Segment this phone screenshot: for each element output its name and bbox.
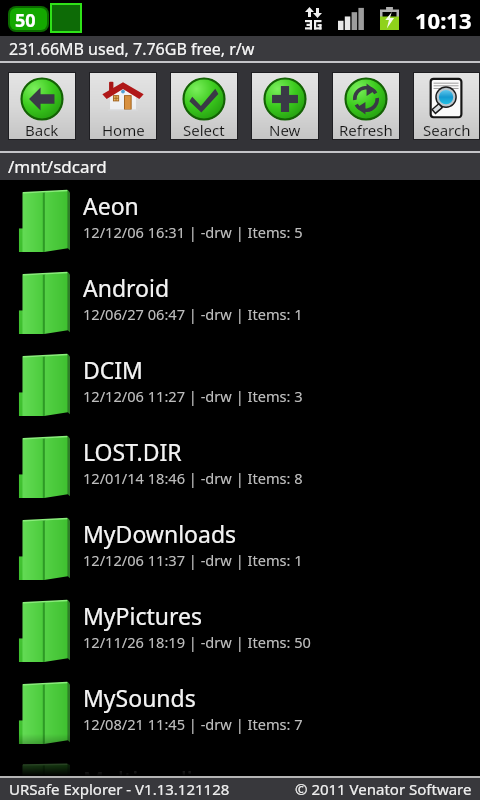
button[interactable]: Search [413,72,480,140]
staticText: 10:13 [415,5,472,35]
staticText: MyDownloads [83,518,237,549]
button[interactable]: Multimedia [0,754,480,776]
staticText: 50 [15,8,36,33]
button[interactable]: Android [0,262,480,344]
button[interactable]: New [251,72,319,140]
staticText: 12/06/27 06:47 | -drw | Items: 1 [83,304,303,324]
staticText: /mnt/sdcard [8,155,107,178]
staticText: 12/08/21 11:45 | -drw | Items: 7 [83,714,303,734]
staticText: Refresh [339,120,393,140]
button[interactable]: MyDownloads [0,508,480,590]
button[interactable]: DCIM [0,344,480,426]
staticText: Back [25,120,59,140]
staticText: Select [183,120,225,140]
staticText: 12/12/06 11:27 | -drw | Items: 3 [83,386,303,406]
staticText: LOST.DIR [83,436,182,467]
button[interactable]: Home [89,72,157,140]
button[interactable]: Back [8,72,76,140]
button[interactable]: LOST.DIR [0,426,480,508]
button[interactable]: MyPictures [0,590,480,672]
button[interactable]: Refresh [332,72,400,140]
staticText: 231.66MB used, 7.76GB free, r/w [9,38,255,60]
staticText: Android [83,272,170,303]
staticText: MySounds [83,682,196,713]
staticText: URSafe Explorer - V1.13.121128 [9,779,230,799]
staticText: 12/11/26 18:19 | -drw | Items: 50 [83,632,311,652]
staticText: Search [423,120,471,140]
staticText: Home [102,120,145,140]
staticText: MyPictures [83,600,203,631]
button[interactable]: MySounds [0,672,480,754]
staticText: New [269,120,301,140]
staticText: © 2011 Venator Software [295,779,472,799]
staticText: DCIM [83,354,143,385]
staticText: Multimedia [83,764,206,786]
button[interactable]: Select [170,72,238,140]
staticText: 12/12/06 11:37 | -drw | Items: 1 [83,550,303,570]
staticText: Aeon [83,190,139,221]
button[interactable]: Aeon [0,180,480,262]
staticText: 12/12/06 16:31 | -drw | Items: 5 [83,222,303,242]
staticText: 12/01/14 18:46 | -drw | Items: 8 [83,468,303,488]
